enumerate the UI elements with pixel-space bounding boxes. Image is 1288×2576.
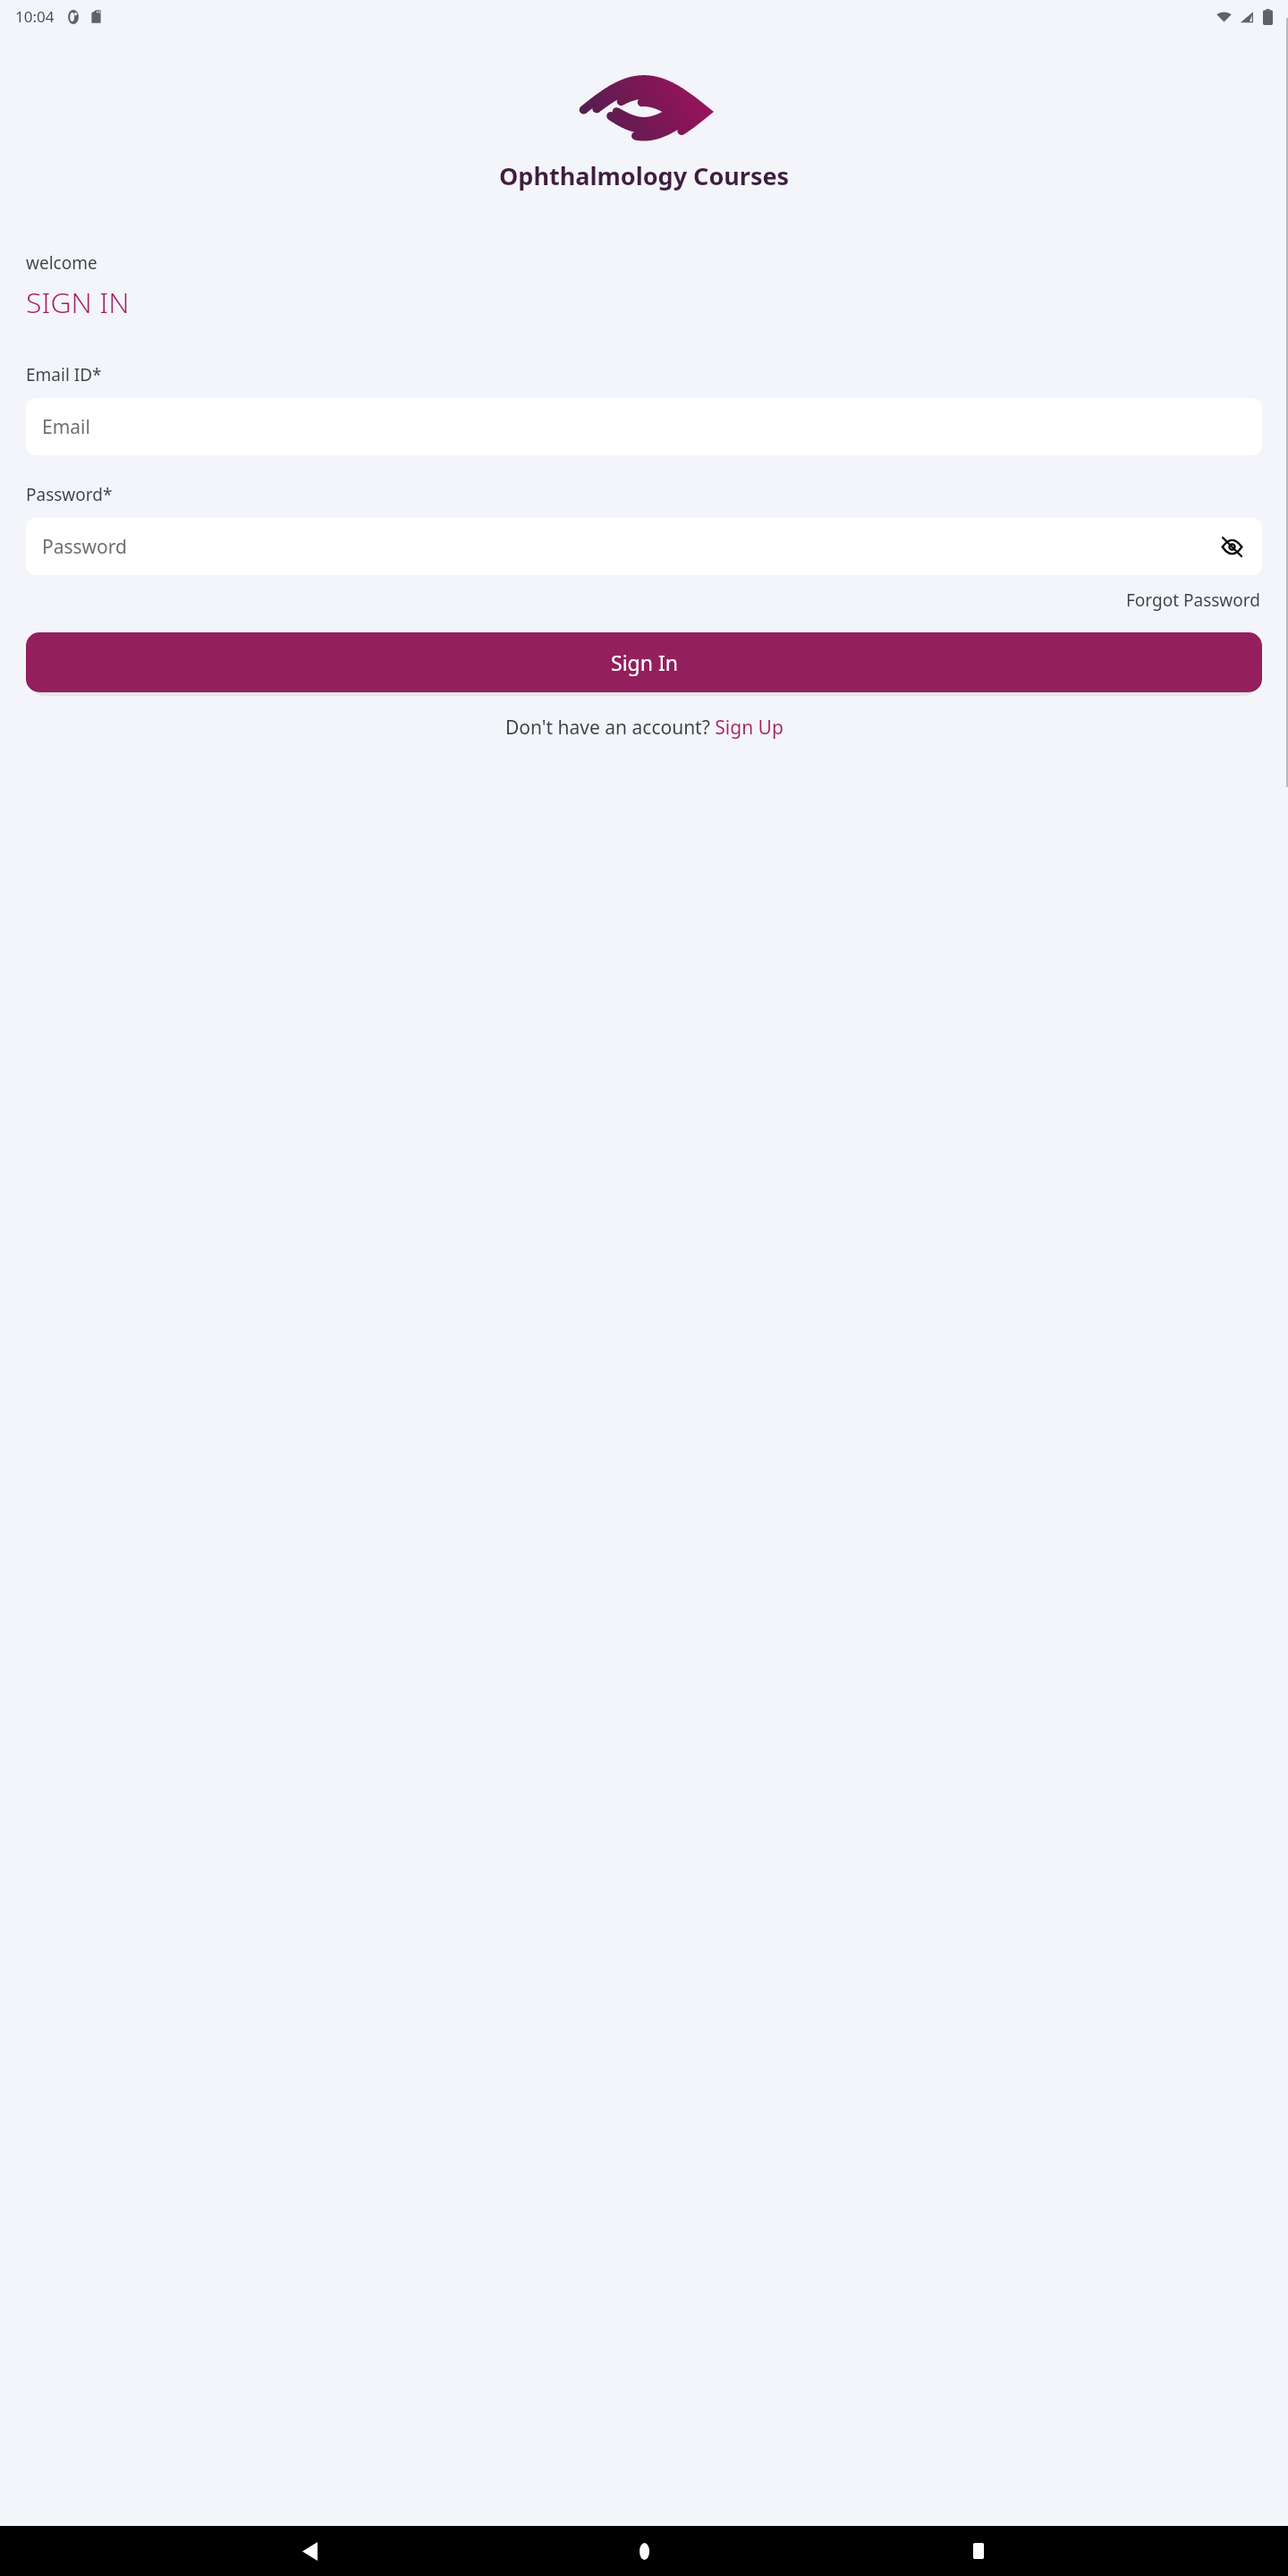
staticText: Email ID* [26, 363, 102, 386]
button[interactable]: Home [619, 2526, 669, 2576]
staticText: Password* [26, 483, 113, 506]
button[interactable]: Recent apps [953, 2526, 1004, 2576]
button[interactable]: Back [284, 2526, 335, 2576]
staticText: Ophthalmology Courses [499, 159, 790, 192]
staticText: 10:04 [15, 6, 55, 27]
button[interactable]: Email [26, 398, 1262, 455]
button[interactable]: Sign In [26, 632, 1262, 692]
button[interactable]: Don't have an account? Sign Up [502, 711, 787, 744]
staticText: Sign In [611, 648, 678, 676]
staticText: welcome [26, 251, 97, 275]
button[interactable]: Password [26, 518, 1262, 575]
staticText: Don't have an account? Sign Up [505, 715, 784, 741]
button[interactable]: Forgot Password [1124, 585, 1262, 615]
staticText: Forgot Password [1126, 589, 1260, 612]
button[interactable]: Show password [1216, 530, 1248, 563]
staticText: Password [42, 534, 127, 560]
staticText: Email [42, 414, 90, 440]
staticText: SIGN IN [26, 283, 130, 322]
